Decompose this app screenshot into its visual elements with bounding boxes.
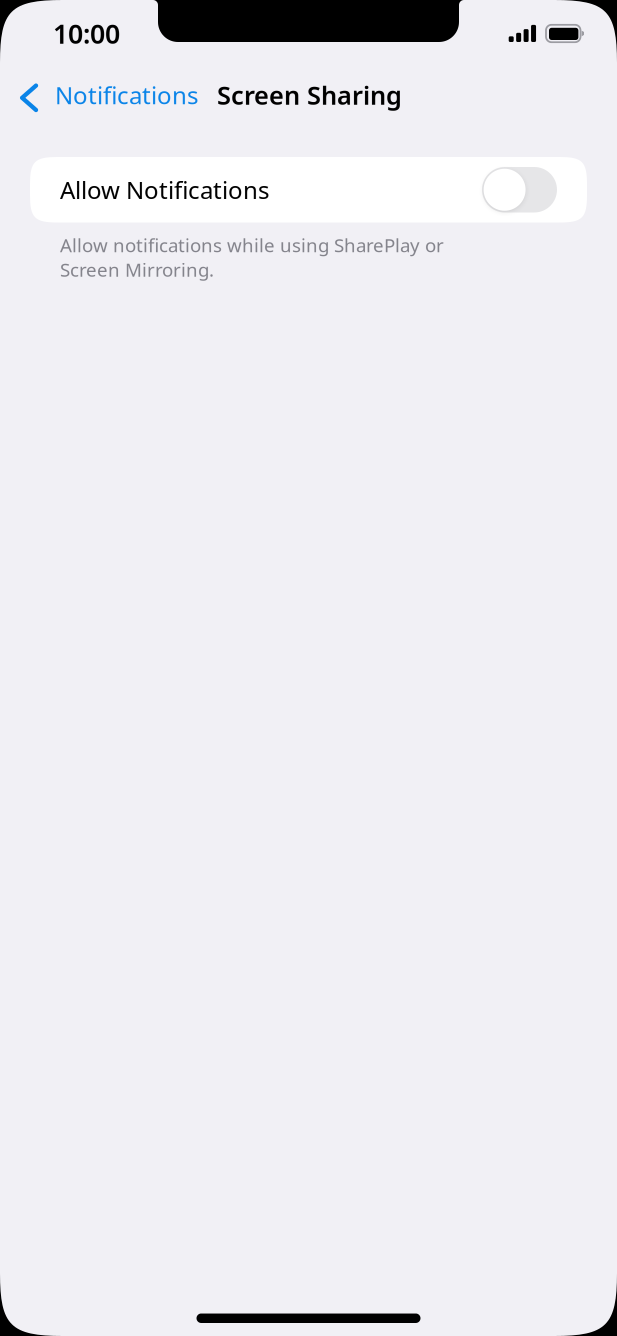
button[interactable]: Allow Notifications [30,157,587,222]
staticText: 10:00 [53,16,120,51]
button[interactable]: Allow Notifications, off [482,167,557,212]
staticText: Screen Sharing [217,78,402,112]
staticText: Notifications [55,79,198,111]
staticText: Allow Notifications [60,174,269,206]
button[interactable]: Notifications [0,69,202,121]
staticText: Allow notifications while using SharePla… [60,232,444,282]
